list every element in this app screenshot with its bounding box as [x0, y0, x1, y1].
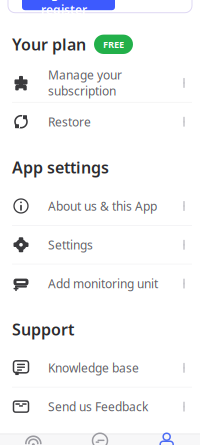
button[interactable]: About us & this App: [0, 187, 200, 225]
staticText: FREE: [103, 38, 124, 50]
button[interactable]: Tools: [67, 427, 133, 445]
staticText: Restore: [48, 114, 91, 130]
button[interactable]: Send us Feedback: [0, 388, 200, 426]
staticText: App settings: [12, 157, 109, 178]
staticText: Knowledge base: [48, 360, 139, 376]
staticText: Send us Feedback: [48, 399, 148, 415]
button[interactable]: Settings: [0, 226, 200, 264]
button[interactable]: Add monitoring unit: [0, 265, 200, 303]
staticText: Support: [12, 319, 74, 340]
staticText: About us & this App: [48, 198, 157, 214]
button[interactable]: Account: [133, 427, 200, 445]
button[interactable]: Restore: [0, 103, 200, 141]
staticText: Manage your subscription: [48, 67, 122, 99]
button[interactable]: Overview: [0, 427, 67, 445]
button[interactable]: Manage your subscription: [0, 64, 200, 102]
button[interactable]: Sign in or register: [22, 0, 115, 10]
staticText: Add monitoring unit: [48, 276, 158, 291]
staticText: Settings: [48, 237, 93, 253]
button[interactable]: Knowledge base: [0, 349, 200, 387]
staticText: Your plan: [12, 34, 86, 55]
staticText: Sign in or register: [41, 0, 96, 18]
